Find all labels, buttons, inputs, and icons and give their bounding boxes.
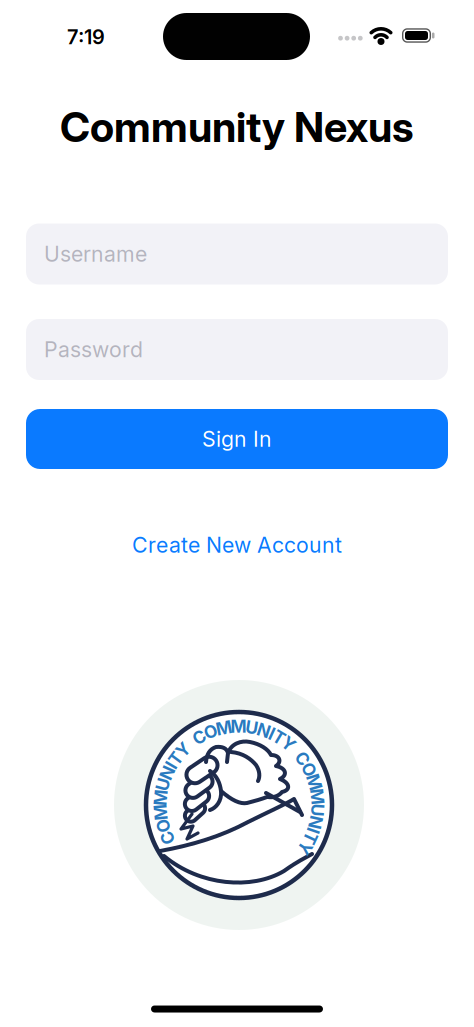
staticText: N	[257, 720, 270, 741]
staticText: O	[204, 722, 217, 742]
staticText: T	[170, 748, 182, 768]
staticText: I	[169, 755, 174, 775]
staticText: I	[311, 820, 316, 841]
button[interactable]: Password text field	[26, 319, 448, 380]
staticText: O	[157, 816, 170, 836]
staticText: C	[193, 727, 206, 747]
staticText: M	[216, 718, 232, 738]
staticText: Y	[298, 838, 311, 858]
staticText: Y	[177, 739, 190, 760]
staticText: I	[269, 723, 274, 744]
staticText: M	[306, 772, 322, 792]
button[interactable]: Create New Account	[132, 532, 342, 558]
staticText: Y	[282, 734, 295, 754]
staticText: U	[157, 774, 170, 795]
staticText: M	[153, 802, 169, 822]
staticText: U	[245, 717, 258, 738]
staticText: N	[309, 812, 322, 832]
staticText: M	[230, 716, 246, 737]
button[interactable]: Sign In	[26, 409, 448, 469]
staticText: C	[296, 748, 309, 769]
staticText: M	[309, 786, 325, 807]
staticText	[294, 741, 298, 761]
staticText: T	[304, 828, 316, 848]
staticText: N	[161, 763, 174, 783]
staticText: O	[302, 759, 315, 779]
staticText: T	[273, 727, 285, 748]
staticText: C	[161, 827, 174, 848]
staticText: Create New Account	[132, 532, 342, 558]
button[interactable]: Username text field	[26, 223, 448, 284]
staticText: M	[153, 787, 169, 808]
staticText: U	[311, 800, 324, 820]
staticText: Password	[44, 337, 143, 362]
staticText: Sign In	[202, 426, 272, 452]
staticText: 7:19	[67, 25, 105, 49]
staticText: Community Nexus	[60, 103, 414, 151]
staticText: Username	[44, 241, 147, 267]
